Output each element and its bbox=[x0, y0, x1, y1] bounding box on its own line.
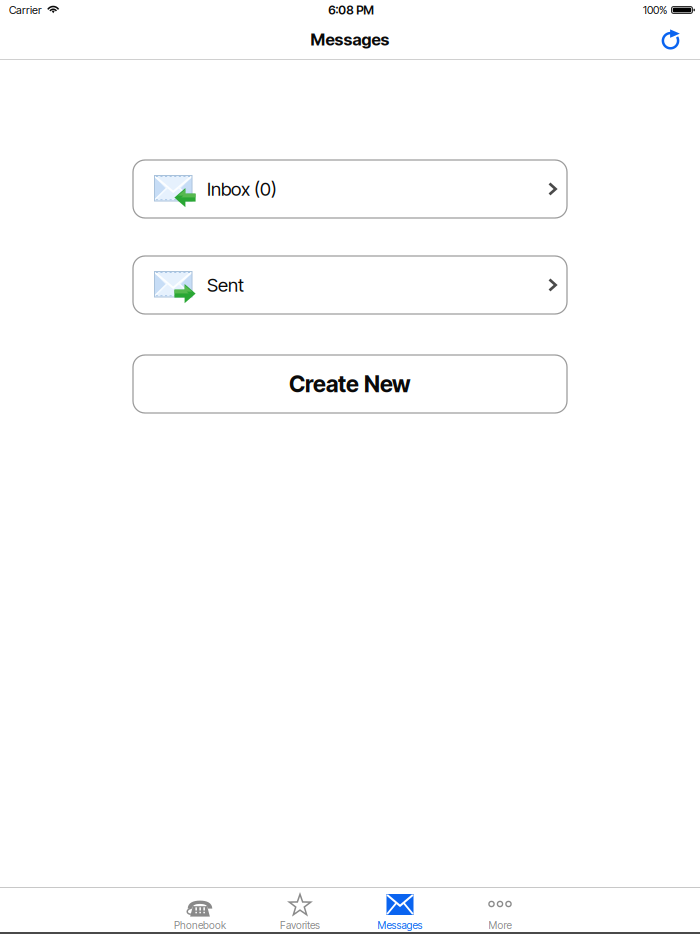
staticText: Create New bbox=[289, 370, 411, 398]
staticText: Sent bbox=[207, 274, 244, 296]
staticText: Inbox (0) bbox=[207, 178, 277, 200]
button[interactable]: Phonebook bbox=[150, 888, 250, 932]
button[interactable]: Inbox (0) bbox=[133, 160, 567, 218]
staticText: More bbox=[488, 919, 511, 931]
staticText: 6:08 PM bbox=[328, 3, 374, 17]
staticText: 100% bbox=[643, 3, 667, 17]
staticText: Carrier bbox=[9, 3, 42, 17]
button[interactable]: More bbox=[450, 888, 550, 932]
staticText: Favorites bbox=[280, 919, 320, 931]
button[interactable]: Refresh bbox=[651, 27, 691, 52]
staticText: Phonebook bbox=[174, 919, 226, 931]
button[interactable]: Sent bbox=[133, 256, 567, 314]
button[interactable]: Create New bbox=[133, 355, 567, 413]
staticText: Messages bbox=[377, 919, 422, 931]
staticText: Messages bbox=[310, 29, 389, 49]
button[interactable]: Messages bbox=[350, 888, 450, 932]
button[interactable]: Favorites bbox=[250, 888, 350, 932]
